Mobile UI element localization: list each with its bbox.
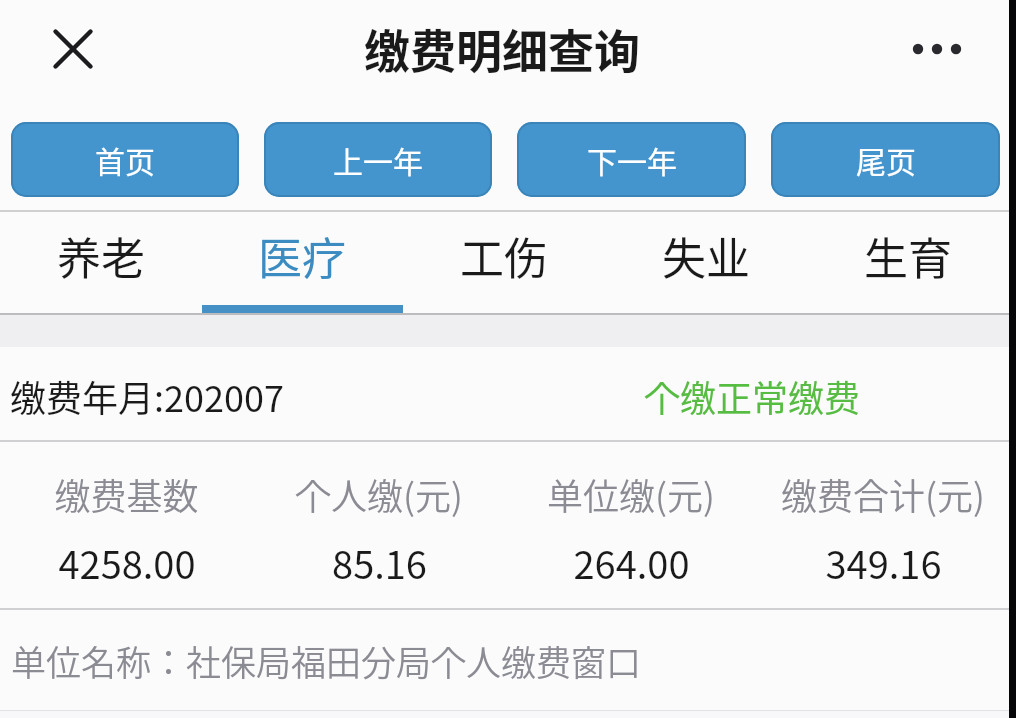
staticText: 单位名称：社保局福田分局个人缴费窗口 [11,635,642,686]
staticText: 下一年 [587,138,677,181]
staticText: 缴费年月:202007 [10,370,284,422]
button[interactable]: 医疗 [201,212,403,313]
staticText: 264.00 [573,535,690,590]
staticText: 尾页 [856,138,916,181]
button[interactable]: 缴费年月:202007 [0,347,1016,440]
button[interactable]: 单位名称：社保局福田分局个人缴费窗口 [0,610,1016,710]
button[interactable]: 首页 [11,122,239,197]
staticText: 个缴正常缴费 [644,370,861,422]
staticText: 85.16 [332,535,427,590]
staticText: 养老 [57,224,145,288]
staticText: 工伤 [460,224,548,288]
staticText: 医疗 [258,224,346,288]
staticText: 上一年 [333,138,423,181]
staticText: 缴费明细查询 [364,15,640,82]
button[interactable]: 工伤 [403,212,605,313]
staticText: 4258.00 [58,535,196,590]
button[interactable]: 失业 [605,212,807,313]
staticText: 349.16 [825,535,942,590]
staticText: 失业 [662,224,750,288]
button[interactable]: 生育 [807,212,1009,313]
staticText: 首页 [95,138,155,181]
staticText: 缴费基数 [54,468,199,520]
button[interactable]: More options [906,29,968,69]
button[interactable]: Close [36,12,110,86]
button[interactable]: 养老 [0,212,201,313]
staticText: 单位缴(元) [547,468,715,520]
button[interactable]: 尾页 [771,122,1000,197]
staticText: 个人缴(元) [295,468,463,520]
staticText: 缴费合计(元) [781,468,985,520]
button[interactable]: 下一年 [517,122,746,197]
button[interactable]: 上一年 [264,122,492,197]
staticText: 生育 [864,224,952,288]
